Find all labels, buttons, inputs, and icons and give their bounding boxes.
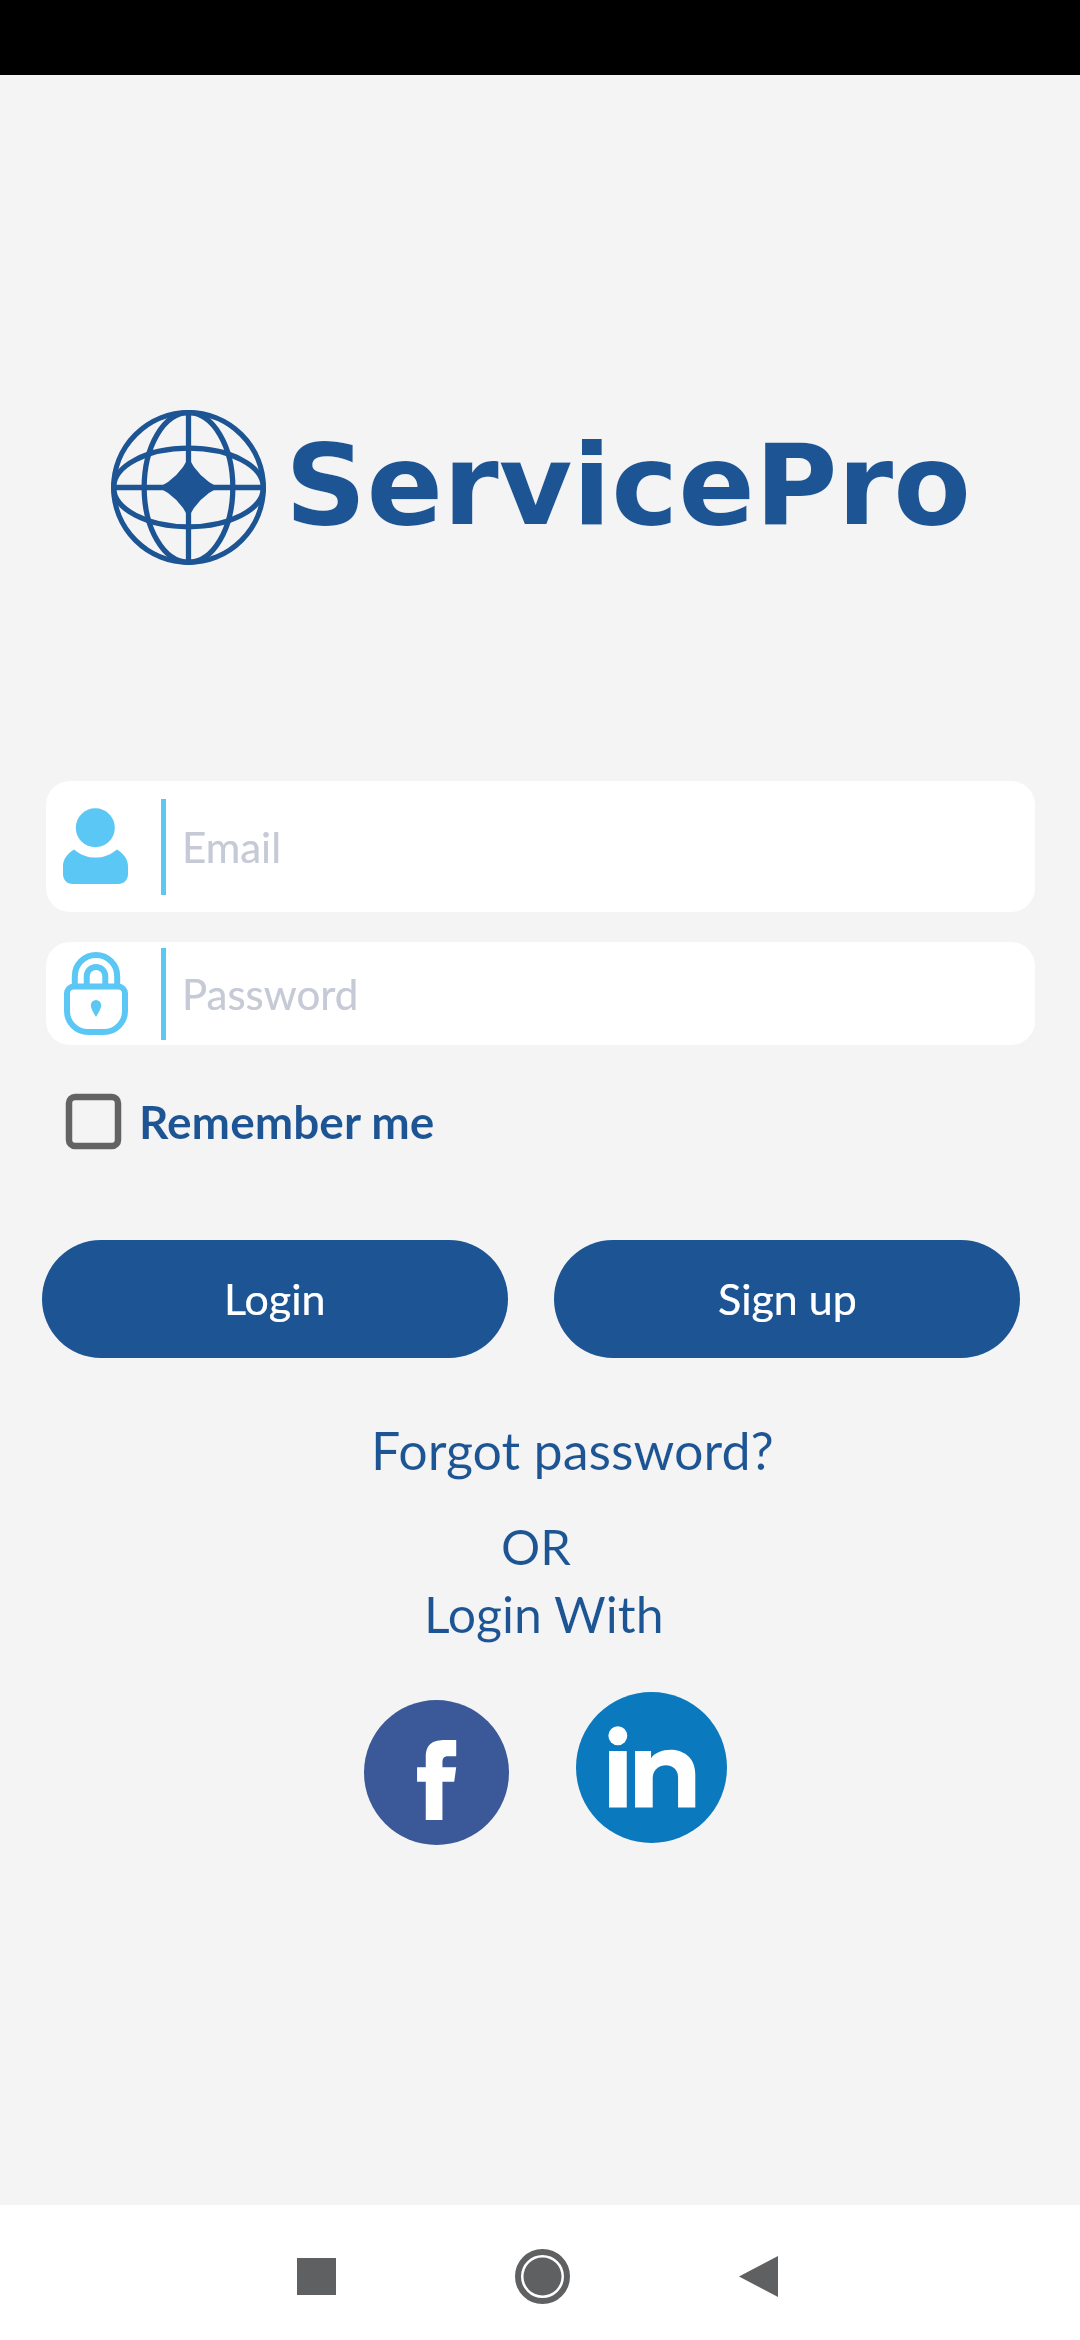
staticText: Remember me [139, 1094, 435, 1149]
button[interactable]: Home [497, 2231, 587, 2321]
button[interactable]: Email [46, 781, 1035, 912]
staticText: ServicePro [285, 419, 971, 551]
button[interactable]: Forgot password? [371, 1419, 774, 1481]
button[interactable]: Recent apps [271, 2231, 361, 2321]
button[interactable]: Password [46, 942, 1035, 1045]
staticText: Forgot password? [371, 1419, 774, 1481]
button[interactable]: Login [42, 1240, 508, 1358]
staticText: Email [182, 822, 282, 872]
staticText: OR [501, 1517, 571, 1576]
button[interactable]: Remember me [66, 1092, 435, 1150]
staticText: Password [182, 969, 359, 1019]
button[interactable]: Sign up [554, 1240, 1020, 1358]
staticText: Login [224, 1273, 326, 1325]
button[interactable]: Login with LinkedIn [576, 1692, 727, 1843]
staticText: Sign up [718, 1273, 857, 1325]
staticText: Login With [424, 1584, 664, 1644]
button[interactable]: Back [713, 2231, 803, 2321]
button[interactable]: Login with Facebook [364, 1700, 509, 1845]
